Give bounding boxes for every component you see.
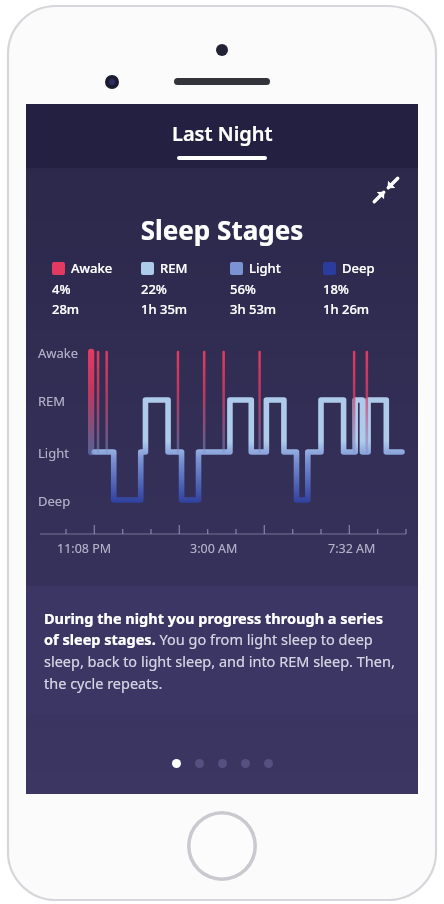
staticText: Deep — [342, 259, 375, 277]
button[interactable]: Awake — [52, 259, 141, 318]
button[interactable]: REM — [141, 259, 230, 318]
button[interactable] — [241, 759, 250, 768]
staticText: Light — [249, 259, 281, 277]
button[interactable]: Collapse — [372, 176, 400, 204]
button[interactable]: Last Night — [26, 104, 418, 168]
staticText: REM — [160, 259, 188, 277]
button[interactable] — [264, 759, 273, 768]
staticText: REM — [38, 392, 66, 410]
staticText: Deep — [38, 492, 71, 510]
staticText: During the night you progress through a … — [44, 608, 400, 693]
staticText: Light — [38, 444, 69, 462]
staticText: 22% — [141, 280, 167, 298]
staticText: 7:32 AM — [328, 540, 376, 557]
staticText: 4% — [52, 280, 71, 298]
staticText: 28m — [52, 300, 80, 318]
staticText: Awake — [38, 344, 79, 362]
button[interactable] — [218, 759, 227, 768]
staticText: 1h 35m — [141, 300, 188, 318]
staticText: Awake — [71, 259, 113, 277]
button[interactable] — [172, 759, 181, 768]
staticText: 11:08 PM — [57, 540, 112, 557]
button[interactable]: Deep — [323, 259, 408, 318]
staticText: 3:00 AM — [190, 540, 238, 557]
staticText: 1h 26m — [323, 300, 370, 318]
staticText: 56% — [230, 280, 256, 298]
button[interactable]: Light — [230, 259, 323, 318]
button[interactable]: During the night you progress through a … — [26, 586, 418, 715]
staticText: 3h 53m — [230, 300, 277, 318]
staticText: Sleep Stages — [26, 212, 418, 247]
staticText: Last Night — [172, 120, 273, 147]
staticText: 18% — [323, 280, 349, 298]
button[interactable] — [195, 759, 204, 768]
